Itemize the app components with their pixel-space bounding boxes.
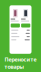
button[interactable] [11,23,20,27]
staticText: Переносите товары [4,56,36,70]
button[interactable] [21,23,30,27]
